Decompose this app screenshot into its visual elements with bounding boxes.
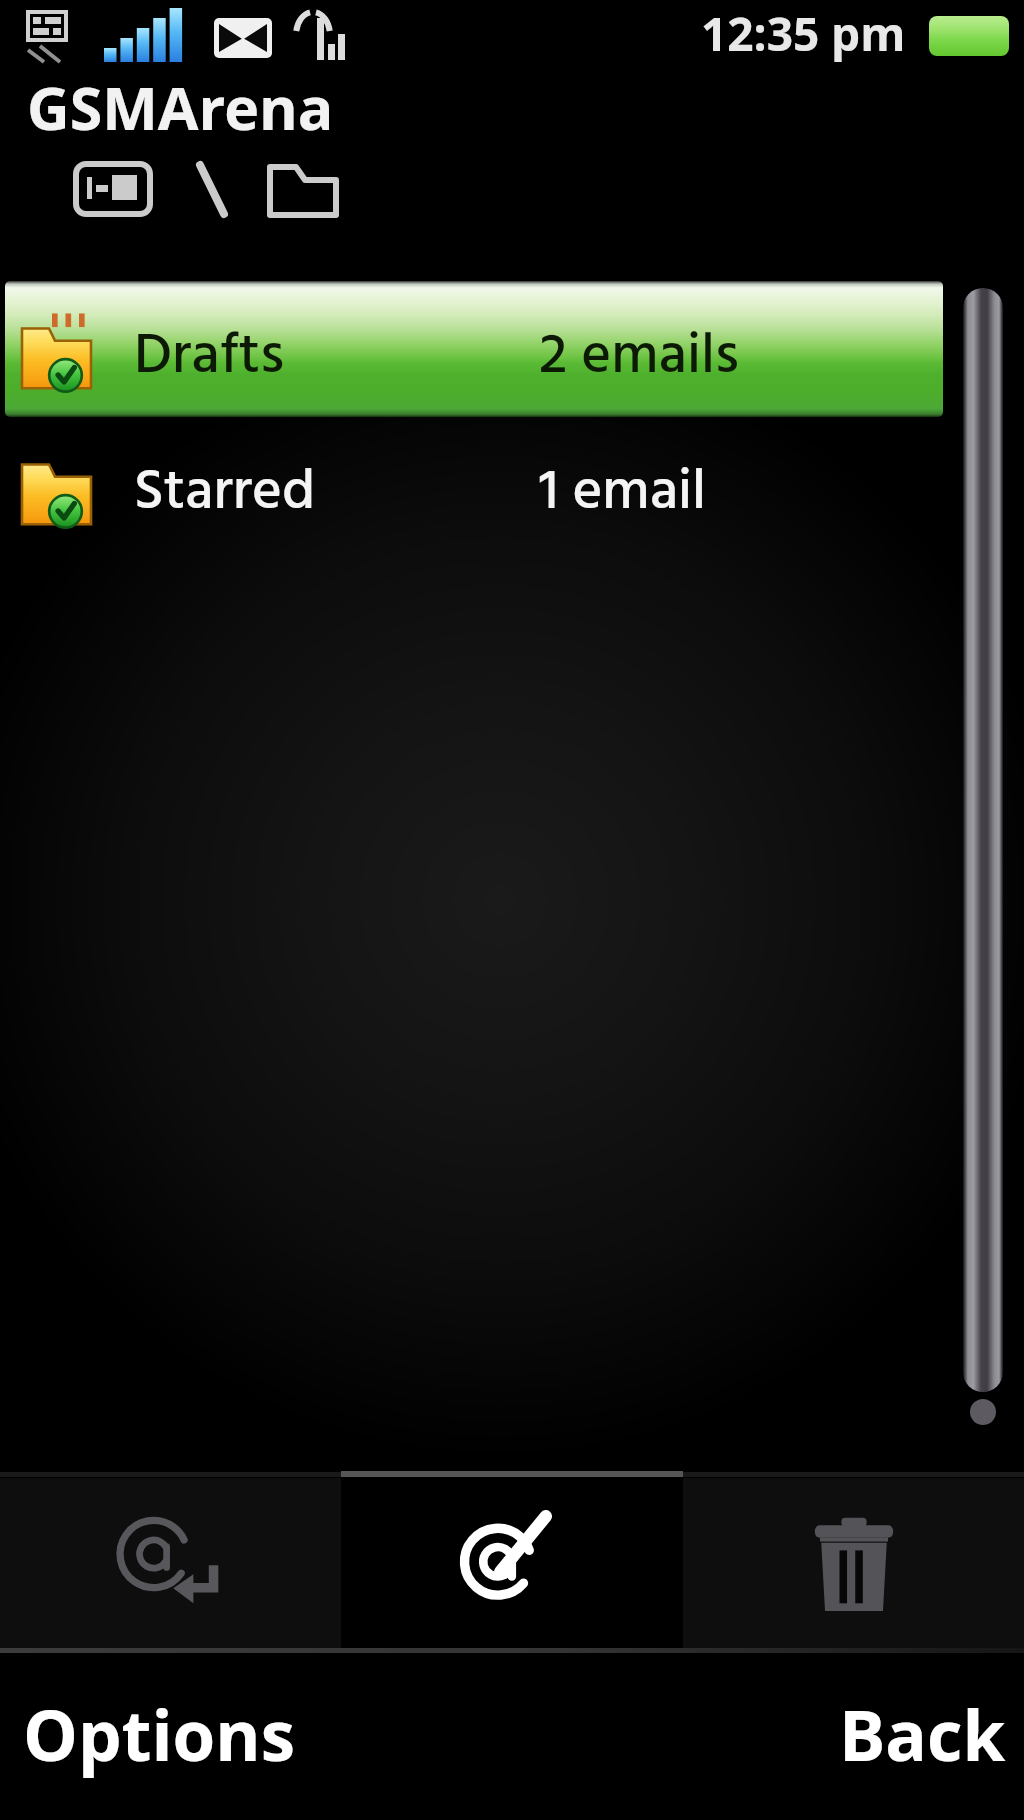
staticText: GSMArena <box>27 67 334 147</box>
staticText: Starred <box>134 448 316 539</box>
button[interactable]: Delete <box>683 1478 1024 1648</box>
staticText: Back <box>839 1687 1006 1781</box>
button[interactable]: Back <box>684 1653 1024 1820</box>
staticText: 12:35 pm <box>701 2 906 65</box>
button[interactable]: Drafts <box>0 281 1024 417</box>
staticText: 2 emails <box>539 312 739 403</box>
button[interactable]: Reply <box>0 1478 342 1648</box>
button[interactable]: Options <box>0 1653 340 1820</box>
staticText: Drafts <box>134 312 285 403</box>
staticText: 1 email <box>539 448 707 539</box>
button[interactable]: Compose <box>342 1478 683 1648</box>
staticText: Options <box>23 1687 295 1781</box>
button[interactable]: Starred <box>0 417 1024 553</box>
